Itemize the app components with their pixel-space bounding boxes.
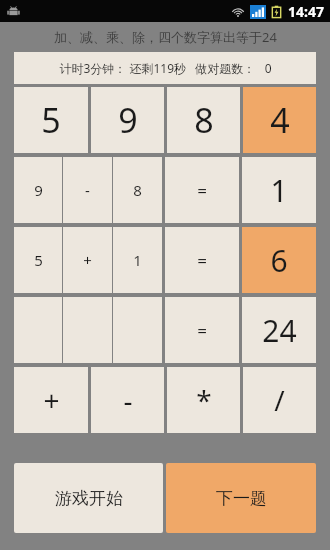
staticText: 14:47 — [288, 2, 324, 21]
button[interactable]: 下一题 — [166, 463, 316, 533]
staticText: 1 — [270, 170, 288, 211]
staticText: 6 — [270, 240, 288, 281]
button[interactable]: 9 — [91, 87, 164, 153]
button[interactable]: 6 — [242, 227, 316, 293]
staticText: 1 — [133, 250, 142, 270]
staticText: 游戏开始 — [55, 488, 123, 509]
button[interactable]: 1 — [113, 227, 162, 293]
staticText: 5 — [41, 97, 61, 143]
button[interactable]: * — [167, 367, 240, 433]
staticText: - — [123, 381, 133, 419]
button[interactable]: / — [243, 367, 316, 433]
button[interactable]: 5 — [14, 227, 62, 293]
button[interactable]: = — [165, 157, 239, 223]
button[interactable]: 5 — [14, 87, 88, 153]
button[interactable]: 8 — [113, 157, 162, 223]
staticText: 9 — [34, 180, 43, 200]
staticText: 计时3分钟： 还剩119秒 做对题数： 0 — [59, 60, 272, 76]
staticText: 下一题 — [216, 488, 267, 509]
staticText: - — [85, 180, 90, 200]
button[interactable]: = — [165, 297, 239, 363]
button[interactable]: 游戏开始 — [14, 463, 163, 533]
button[interactable]: 8 — [167, 87, 240, 153]
staticText: 8 — [133, 180, 142, 200]
staticText: 加、减、乘、除，四个数字算出等于24 — [54, 28, 277, 46]
button[interactable]: 9 — [14, 157, 62, 223]
staticText: = — [197, 249, 207, 272]
staticText: 24 — [262, 310, 297, 351]
button[interactable]: - — [91, 367, 164, 433]
staticText: 4 — [270, 97, 290, 143]
button[interactable]: 24 — [242, 297, 316, 363]
staticText: / — [274, 381, 285, 419]
staticText: = — [197, 319, 207, 342]
staticText: * — [196, 381, 212, 419]
staticText: + — [83, 250, 92, 270]
button[interactable]: - — [63, 157, 112, 223]
staticText: 9 — [118, 97, 138, 143]
button[interactable]: = — [165, 227, 239, 293]
staticText: = — [197, 179, 207, 202]
button[interactable]: 1 — [242, 157, 316, 223]
button[interactable]: 4 — [243, 87, 316, 153]
staticText: 5 — [34, 250, 43, 270]
button[interactable]: + — [14, 367, 88, 433]
button[interactable]: + — [63, 227, 112, 293]
staticText: 8 — [194, 97, 214, 143]
staticText: + — [43, 381, 60, 419]
